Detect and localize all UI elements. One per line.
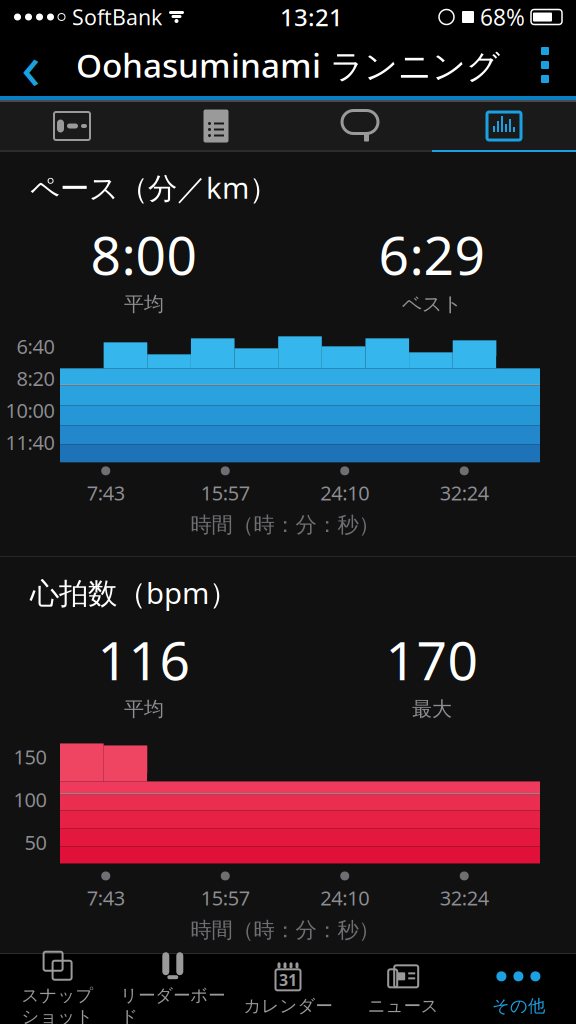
staticText: 24:10 bbox=[320, 479, 369, 506]
button[interactable]: 31 bbox=[230, 954, 346, 1024]
staticText: ‹ bbox=[21, 22, 41, 107]
staticText: スナップショット bbox=[22, 985, 94, 1024]
staticText: 時間（時：分：秒） bbox=[190, 917, 379, 943]
staticText: ベスト bbox=[402, 292, 462, 316]
staticText: ペース（分／km） bbox=[30, 168, 278, 207]
staticText: 7:43 bbox=[87, 884, 125, 911]
button[interactable]: リーダーボード bbox=[115, 954, 230, 1024]
staticText: 150 bbox=[13, 743, 46, 770]
button[interactable]: スナップショット bbox=[0, 954, 115, 1024]
button[interactable]: その他 bbox=[461, 954, 576, 1024]
staticText: 100 bbox=[13, 786, 46, 813]
staticText: カレンダー bbox=[243, 995, 332, 1017]
button[interactable]: Details bbox=[144, 102, 288, 150]
staticText: 時間（時：分：秒） bbox=[190, 512, 379, 538]
staticText: 8:00 bbox=[90, 219, 197, 290]
staticText: 13:21 bbox=[280, 1, 343, 33]
staticText: 高度（m） bbox=[30, 980, 173, 1019]
staticText: 68% bbox=[480, 2, 525, 32]
button[interactable]: Charts bbox=[432, 102, 576, 150]
staticText: 6:29 bbox=[378, 219, 485, 290]
staticText: 8:20 bbox=[16, 365, 54, 392]
button[interactable]: ニュース bbox=[346, 954, 461, 1024]
staticText: リーダーボード bbox=[120, 985, 225, 1024]
staticText: 50 bbox=[24, 829, 46, 855]
staticText: 170 bbox=[385, 624, 478, 695]
staticText: 心拍数（bpm） bbox=[30, 573, 238, 612]
staticText: 32:24 bbox=[440, 884, 489, 911]
staticText: SoftBank bbox=[72, 3, 162, 31]
staticText: Oohasuminami ランニング bbox=[76, 43, 500, 87]
button[interactable]: Map bbox=[0, 102, 144, 150]
staticText: 24:10 bbox=[320, 884, 369, 911]
button[interactable]: Back bbox=[0, 35, 62, 95]
staticText: 7:43 bbox=[87, 479, 125, 506]
staticText: 116 bbox=[97, 624, 190, 695]
staticText: 平均 bbox=[124, 697, 164, 721]
staticText: 6:40 bbox=[16, 333, 54, 360]
staticText: 10:00 bbox=[5, 397, 54, 424]
staticText: ニュース bbox=[368, 995, 439, 1017]
staticText: 15:57 bbox=[201, 884, 250, 911]
button[interactable]: More options bbox=[514, 35, 576, 95]
staticText: 平均 bbox=[124, 292, 164, 316]
staticText: 最大 bbox=[412, 697, 452, 721]
staticText: 32:24 bbox=[440, 479, 489, 506]
staticText: 31 bbox=[279, 969, 297, 990]
staticText: 11:40 bbox=[5, 429, 54, 456]
staticText: その他 bbox=[492, 995, 545, 1017]
button[interactable]: Laps bbox=[288, 102, 432, 150]
staticText: 15:57 bbox=[201, 479, 250, 506]
